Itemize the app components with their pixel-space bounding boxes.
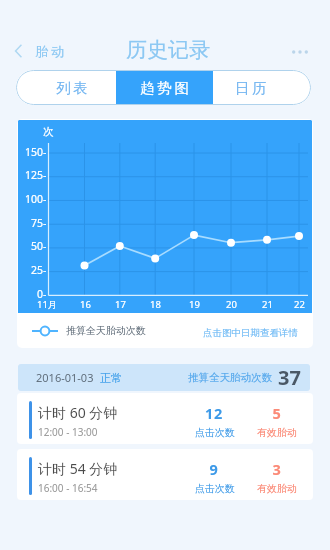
staticText: 18: [150, 298, 161, 311]
button[interactable]: 趋势图: [116, 70, 213, 105]
staticText: 0-: [37, 287, 47, 301]
staticText: 推算全天胎动次数: [188, 371, 272, 384]
staticText: 日历: [235, 79, 270, 97]
button[interactable]: 列表: [16, 70, 116, 105]
staticText: 16: [80, 298, 91, 311]
staticText: 胎动: [35, 43, 68, 59]
button[interactable]: 点击图中日期查看详情: [203, 325, 298, 337]
button[interactable]: 计时 54 分钟: [17, 449, 313, 500]
staticText: 150-: [25, 145, 47, 159]
staticText: 37: [278, 364, 301, 391]
staticText: 点击次数: [185, 482, 245, 495]
staticText: 3: [247, 459, 307, 479]
staticText: 列表: [56, 79, 91, 97]
staticText: 75-: [31, 216, 47, 230]
staticText: 100-: [25, 192, 47, 206]
button[interactable]: More options: [284, 36, 316, 68]
staticText: 9: [184, 459, 244, 479]
button[interactable]: 日历: [213, 70, 311, 105]
staticText: 有效胎动: [247, 426, 307, 439]
staticText: 19: [189, 298, 200, 311]
staticText: 20: [226, 298, 237, 311]
button[interactable]: 计时 60 分钟: [17, 393, 313, 444]
staticText: 趋势图: [140, 79, 192, 97]
staticText: 12:00 - 13:00: [38, 425, 98, 439]
staticText: 50-: [31, 239, 47, 253]
staticText: 17: [115, 298, 126, 311]
staticText: 125-: [25, 168, 47, 182]
staticText: 25-: [31, 263, 47, 277]
staticText: 点击次数: [185, 426, 245, 439]
staticText: 历史记录: [126, 37, 210, 63]
staticText: 有效胎动: [247, 482, 307, 495]
staticText: 计时 54 分钟: [38, 459, 118, 478]
staticText: 计时 60 分钟: [38, 403, 118, 422]
staticText: 推算全天胎动次数: [66, 324, 146, 337]
staticText: 正常: [100, 371, 122, 385]
staticText: 次: [43, 125, 54, 138]
staticText: 16:00 - 16:54: [38, 481, 98, 495]
staticText: 12: [184, 403, 244, 423]
staticText: 21: [262, 298, 273, 311]
staticText: 11月: [37, 298, 58, 311]
staticText: 2016-01-03: [36, 370, 94, 385]
staticText: 5: [247, 403, 307, 423]
staticText: 22: [294, 298, 305, 311]
button[interactable]: 胎动: [10, 36, 73, 66]
